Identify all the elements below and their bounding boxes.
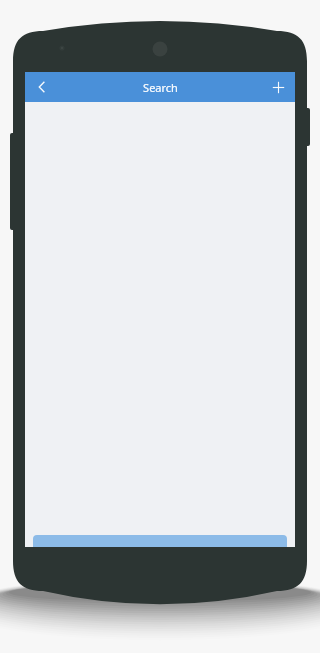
button[interactable]: Add bbox=[261, 72, 295, 102]
button[interactable] bbox=[33, 535, 287, 547]
staticText: Search bbox=[143, 80, 178, 95]
button[interactable]: Back bbox=[25, 72, 59, 102]
